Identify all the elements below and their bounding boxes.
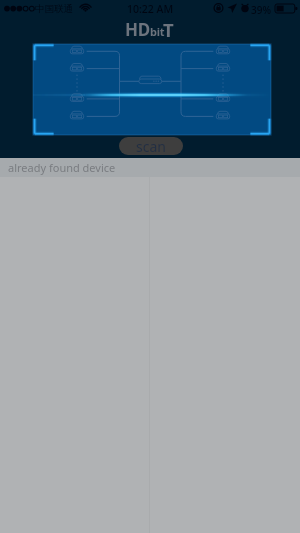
button[interactable]: scan: [119, 137, 183, 155]
staticText: bit: [150, 24, 165, 39]
staticText: 中国联通: [35, 3, 73, 15]
staticText: 10:22 AM: [127, 2, 174, 16]
staticText: already found device: [8, 160, 116, 175]
staticText: T: [163, 17, 174, 42]
staticText: HD: [125, 18, 151, 41]
staticText: 39%: [251, 3, 271, 17]
staticText: scan: [136, 137, 166, 155]
